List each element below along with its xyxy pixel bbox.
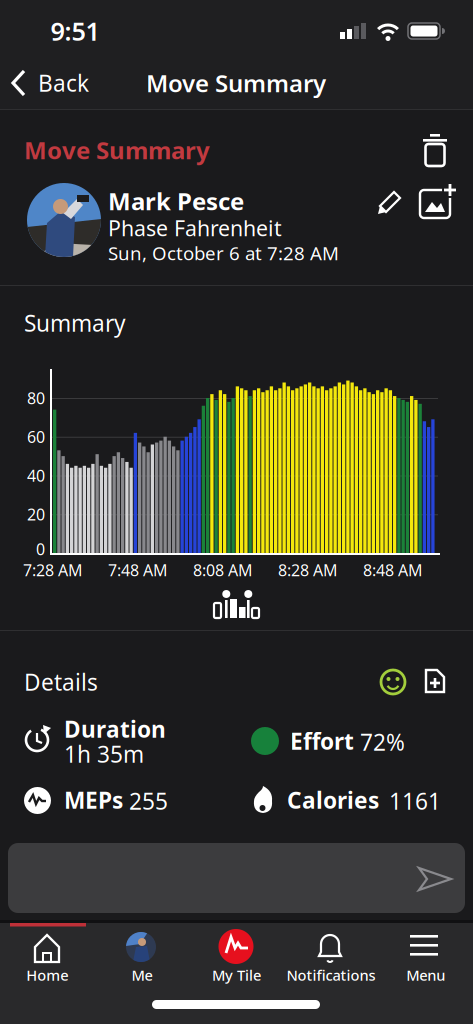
button[interactable]: Back (1, 62, 103, 104)
staticText: Effort (290, 726, 354, 756)
staticText: 0 (36, 538, 45, 560)
button[interactable]: Menu (378, 923, 473, 1015)
staticText: 7:48 AM (108, 559, 168, 581)
staticText: Me (131, 965, 152, 985)
button[interactable]: Add note (417, 661, 453, 701)
staticText: 7:28 AM (23, 559, 83, 581)
button[interactable]: My Tile (189, 923, 284, 1015)
staticText: My Tile (212, 965, 261, 985)
staticText: Move Summary (24, 134, 210, 166)
staticText: 72% (360, 727, 405, 757)
staticText: Phase Fahrenheit (108, 214, 282, 242)
button[interactable]: Add photo (415, 178, 459, 222)
staticText: Mark Pesce (108, 185, 244, 217)
button[interactable]: Add reaction (375, 664, 411, 700)
staticText: 9:51 (50, 14, 99, 48)
staticText: Menu (406, 965, 445, 985)
staticText: MEPs (64, 785, 123, 815)
staticText: 80 (27, 387, 45, 409)
staticText: 8:48 AM (363, 559, 423, 581)
button[interactable]: Home (0, 923, 95, 1015)
staticText: Back (38, 68, 89, 98)
staticText: 255 (129, 786, 168, 816)
staticText: Move Summary (146, 67, 326, 99)
staticText: Notifications (287, 965, 376, 985)
staticText: 20 (27, 504, 45, 525)
staticText: 1h 35m (64, 739, 144, 769)
button[interactable]: Notifications (284, 923, 378, 1015)
staticText: Summary (24, 308, 126, 338)
staticText: Duration (64, 714, 166, 744)
staticText: Sun, October 6 at 7:28 AM (108, 241, 339, 265)
button[interactable]: Edit move (372, 185, 408, 221)
staticText: 40 (27, 465, 45, 486)
staticText: Home (26, 965, 68, 985)
staticText: 1161 (389, 786, 441, 816)
button[interactable]: Delete move (417, 130, 453, 170)
button[interactable]: Add comment (8, 843, 465, 913)
staticText: 60 (27, 426, 45, 447)
staticText: 8:28 AM (278, 559, 338, 581)
staticText: 8:08 AM (193, 559, 253, 581)
button[interactable]: Me (95, 923, 189, 1015)
staticText: Calories (287, 785, 379, 815)
staticText: Details (24, 667, 98, 697)
button[interactable]: Chart options (208, 582, 264, 626)
button[interactable]: Send comment (413, 859, 457, 899)
